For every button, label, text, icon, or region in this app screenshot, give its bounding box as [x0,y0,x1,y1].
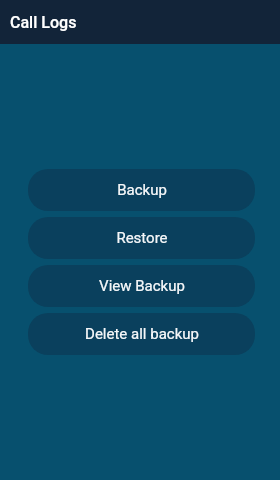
button[interactable]: Restore [28,217,255,259]
staticText: Call Logs [10,13,77,32]
staticText: Restore [116,229,168,247]
staticText: Delete all backup [85,325,199,343]
staticText: View Backup [99,277,185,295]
staticText: Backup [117,181,167,199]
button[interactable]: View Backup [28,265,255,307]
button[interactable]: Delete all backup [28,313,255,355]
button[interactable]: Backup [28,169,255,211]
